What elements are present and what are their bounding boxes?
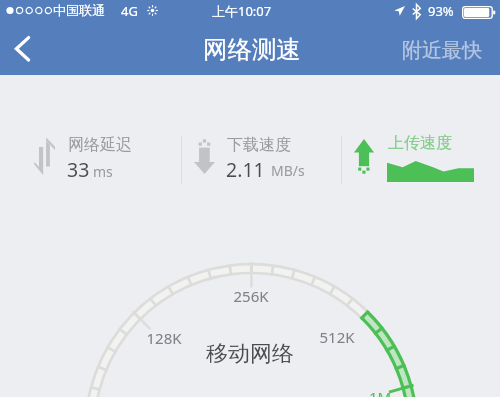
staticText: 上传速度 bbox=[388, 133, 452, 153]
staticText: 256K bbox=[221, 286, 281, 306]
staticText: 网络测速 bbox=[203, 34, 301, 65]
staticText: 下载速度 bbox=[227, 135, 291, 155]
staticText: 1M bbox=[350, 387, 410, 397]
staticText: ms bbox=[93, 162, 113, 181]
staticText: 512K bbox=[307, 327, 367, 347]
button[interactable]: Back bbox=[0, 26, 46, 75]
staticText: 128K bbox=[134, 328, 194, 348]
staticText: 4G bbox=[121, 2, 138, 20]
staticText: MB/s bbox=[271, 161, 305, 180]
staticText: 93% bbox=[428, 2, 454, 20]
staticText: 2.11 bbox=[226, 156, 265, 183]
button[interactable]: 附近最快 bbox=[402, 38, 482, 63]
staticText: 33 bbox=[67, 156, 90, 183]
staticText: 网络延迟 bbox=[68, 135, 132, 155]
staticText: 上午10:07 bbox=[212, 2, 272, 20]
staticText: 附近最快 bbox=[402, 38, 482, 63]
staticText: 移动网络 bbox=[206, 340, 294, 368]
staticText: 中国联通 bbox=[53, 2, 105, 18]
